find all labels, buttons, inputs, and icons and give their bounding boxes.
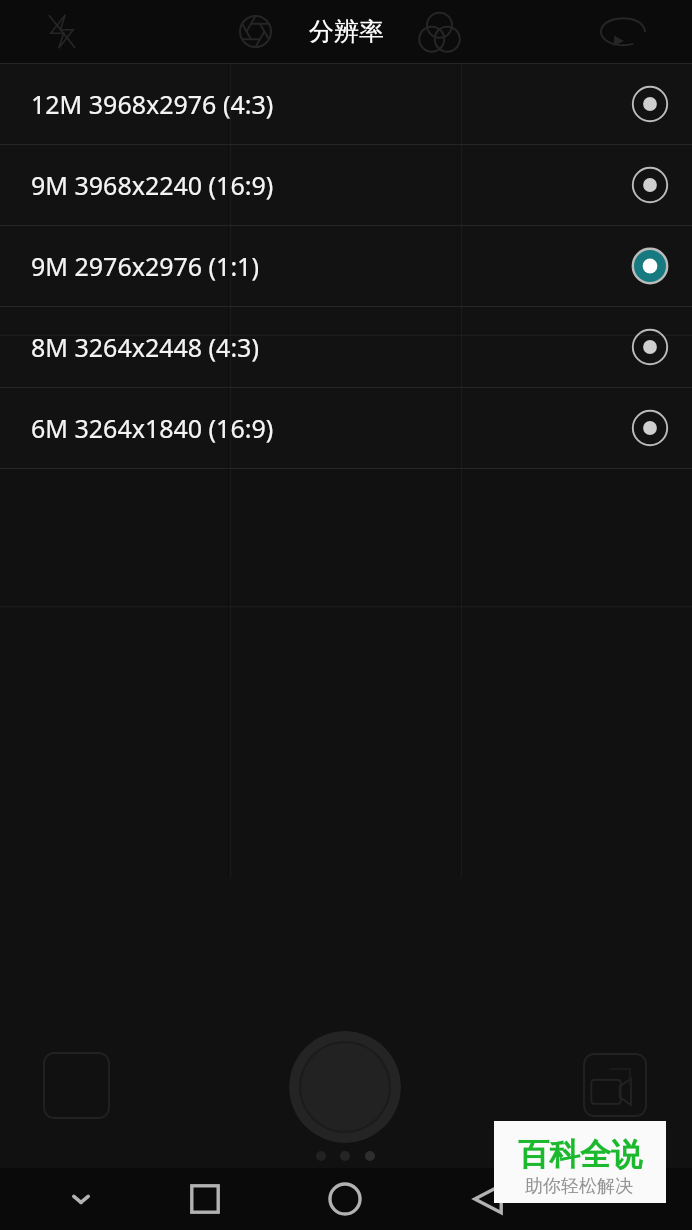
staticText: 9M 2976x2976 (1:1) [31,249,259,283]
button[interactable]: Recents [170,1168,240,1230]
button[interactable]: Home [309,1168,381,1230]
button[interactable]: Hide navigation [46,1168,116,1230]
button[interactable]: Back [453,1168,523,1230]
staticText: 百科全说 [518,1135,642,1174]
button[interactable]: Gallery [43,1052,110,1119]
staticText: 8M 3264x2448 (4:3) [31,330,259,364]
staticText: 12M 3968x2976 (4:3) [31,87,274,121]
button[interactable]: 6M 3264x1840 (16:9) [0,388,692,469]
button[interactable]: 12M 3968x2976 (4:3) [0,64,692,145]
button[interactable]: Shutter [289,1031,401,1143]
button[interactable]: 8M 3264x2448 (4:3) [0,307,692,388]
button[interactable]: Video mode [583,1053,647,1117]
button[interactable]: 9M 2976x2976 (1:1) [0,226,692,307]
button[interactable]: Color filter [405,0,474,63]
staticText: 助你轻松解决 [525,1175,633,1198]
button[interactable]: 9M 3968x2240 (16:9) [0,145,692,226]
button[interactable]: Flash off [34,0,90,63]
staticText: 9M 3968x2240 (16:9) [31,168,274,202]
button[interactable]: Switch camera [586,0,660,63]
staticText: 6M 3264x1840 (16:9) [31,411,274,445]
button[interactable]: Aperture [225,0,286,63]
staticText: 分辨率 [309,16,384,47]
